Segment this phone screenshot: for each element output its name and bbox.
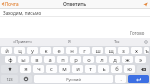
staticText: ю [127,65,132,73]
button[interactable]: ц [14,47,25,54]
staticText: л [100,56,104,63]
staticText: Я [68,39,71,45]
staticText: у [31,47,34,54]
button[interactable]: 123 [1,75,18,83]
staticText: п [61,56,65,63]
staticText: ы [21,56,26,63]
button[interactable]: о [83,56,94,63]
button[interactable]: Готово [129,29,146,37]
staticText: ь [102,65,106,73]
staticText: Готово [130,30,145,36]
button[interactable]: т [85,65,96,73]
staticText: ш [95,47,101,54]
staticText: Заходим, письмо [3,10,42,16]
button[interactable]: ь [98,65,109,73]
button[interactable]: б [111,65,122,73]
button[interactable]: и [72,65,83,73]
staticText: а [48,56,52,63]
button[interactable]: л [96,56,107,63]
staticText: Русский [66,77,81,82]
staticText: ъ [145,47,149,54]
button[interactable]: м [59,65,70,73]
button[interactable]: а [44,56,55,63]
staticText: я [24,65,28,73]
button[interactable]: у [27,47,38,54]
button[interactable]: Ты [93,38,140,46]
button[interactable]: р [70,56,81,63]
button[interactable]: «Привет» [0,38,46,46]
button[interactable]: к [40,47,51,54]
button[interactable]: д [109,56,120,63]
staticText: щ [108,47,114,54]
staticText: ф [8,56,13,63]
staticText: с [50,65,53,73]
button[interactable]: н [66,47,77,54]
button[interactable]: в [31,56,42,63]
button[interactable]: е [53,47,64,54]
button[interactable]: ч [33,65,44,73]
staticText: к [44,47,48,54]
button[interactable]: . [115,75,126,83]
staticText: ц [18,47,22,54]
button[interactable]: г [79,47,90,54]
button[interactable]: х [131,47,142,54]
staticText: е [57,47,61,54]
button[interactable]: с [46,65,57,73]
button[interactable]: э [135,56,146,63]
button[interactable]: п [57,56,68,63]
button[interactable]: з [118,47,129,54]
staticText: Ответить [63,1,87,8]
button[interactable]: Send [142,1,148,7]
staticText: т [89,65,92,73]
staticText: ж [125,56,130,63]
staticText: н [70,47,74,54]
staticText: «Привет» [13,39,33,45]
staticText: и [76,65,80,73]
staticText: г [83,47,86,54]
button[interactable]: Return [128,75,149,83]
staticText: 123 [6,77,13,82]
button[interactable]: ж [122,56,133,63]
staticText: в [35,56,39,63]
button[interactable]: й [1,47,12,54]
button[interactable]: ш [92,47,103,54]
button[interactable]: ы [18,56,29,63]
staticText: р [74,56,78,63]
staticText: ч [37,65,41,73]
staticText: о [87,56,91,63]
staticText: д [113,56,117,63]
staticText: х [135,47,138,54]
staticText: Почта [5,1,19,7]
button[interactable]: Emoji [20,75,32,83]
staticText: . [120,76,122,82]
staticText: Ты [114,39,120,45]
button[interactable]: Keyboard settings [144,40,148,44]
button[interactable]: Shift [1,65,18,73]
button[interactable]: ф [5,56,16,63]
button[interactable]: ъ [144,47,149,54]
staticText: й [5,47,9,54]
staticText: м [62,65,67,73]
button[interactable]: Почта [0,0,21,8]
button[interactable]: я [20,65,31,73]
button[interactable]: ю [124,65,135,73]
staticText: б [115,65,119,73]
button[interactable]: Я [46,38,93,46]
button[interactable]: Backspace [137,65,149,73]
button[interactable]: Русский [34,75,113,83]
button[interactable]: щ [105,47,116,54]
staticText: з [122,47,125,54]
staticText: э [139,56,142,63]
